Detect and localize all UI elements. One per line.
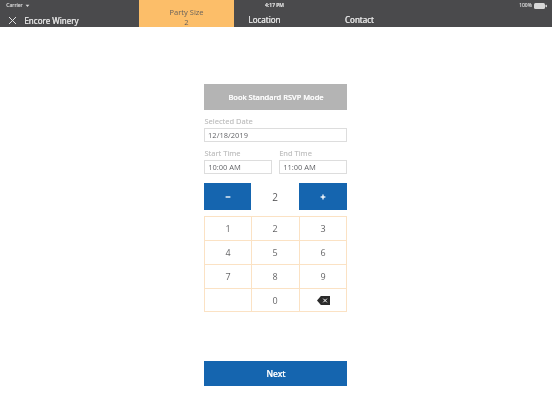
staticText: 5 [272,246,278,258]
button[interactable]: 0 [251,288,299,312]
staticText: 8 [272,270,278,282]
button[interactable]: Decrease [204,183,251,210]
button[interactable]: Increase [299,183,347,210]
button[interactable]: 10:00 AM [204,160,272,174]
staticText: 2 [272,190,278,204]
button[interactable]: Location [248,11,338,27]
staticText: Contact [345,14,374,25]
button[interactable]: 5 [251,240,299,264]
staticText: 11:00 AM [283,162,316,172]
staticText: Selected Date [204,116,253,126]
staticText: 4:17 PM [265,2,284,9]
button[interactable]: 11:00 AM [279,160,347,174]
staticText: 9 [320,270,326,282]
button[interactable]: Next [204,361,347,386]
button[interactable]: 1 [204,216,251,240]
staticText: 0 [272,294,278,306]
staticText: Book Standard RSVP Mode [228,92,324,102]
staticText: Start Time [204,148,241,158]
staticText: Location [248,14,281,25]
button[interactable]: 9 [299,264,347,288]
button[interactable]: Party Size [139,0,234,27]
button[interactable] [204,288,251,312]
staticText: 3 [320,222,326,234]
button[interactable]: 4 [204,240,251,264]
button[interactable]: 3 [299,216,347,240]
button[interactable]: 8 [251,264,299,288]
other: Close [8,16,17,25]
staticText: Party Size [169,7,204,17]
staticText: 2 [272,222,278,234]
button[interactable]: 2 [251,216,299,240]
staticText: 100% [519,2,532,9]
button[interactable]: 7 [204,264,251,288]
button[interactable]: Contact [345,11,435,27]
staticText: 4 [225,246,231,258]
button[interactable]: 12/18/2019 [204,128,347,142]
button[interactable]: Book Standard RSVP Mode [204,84,347,110]
staticText: 6 [320,246,326,258]
staticText: Next [266,368,286,380]
button[interactable]: Backspace [299,288,347,312]
staticText: Encore Winery [24,15,79,26]
staticText: End Time [279,148,312,158]
staticText: 1 [225,222,231,234]
staticText: Carrier [6,2,23,9]
button[interactable]: Close [0,13,79,27]
staticText: 7 [225,270,231,282]
staticText: 2 [184,17,189,27]
staticText: 12/18/2019 [208,130,248,140]
button[interactable]: 6 [299,240,347,264]
staticText: 10:00 AM [208,162,241,172]
